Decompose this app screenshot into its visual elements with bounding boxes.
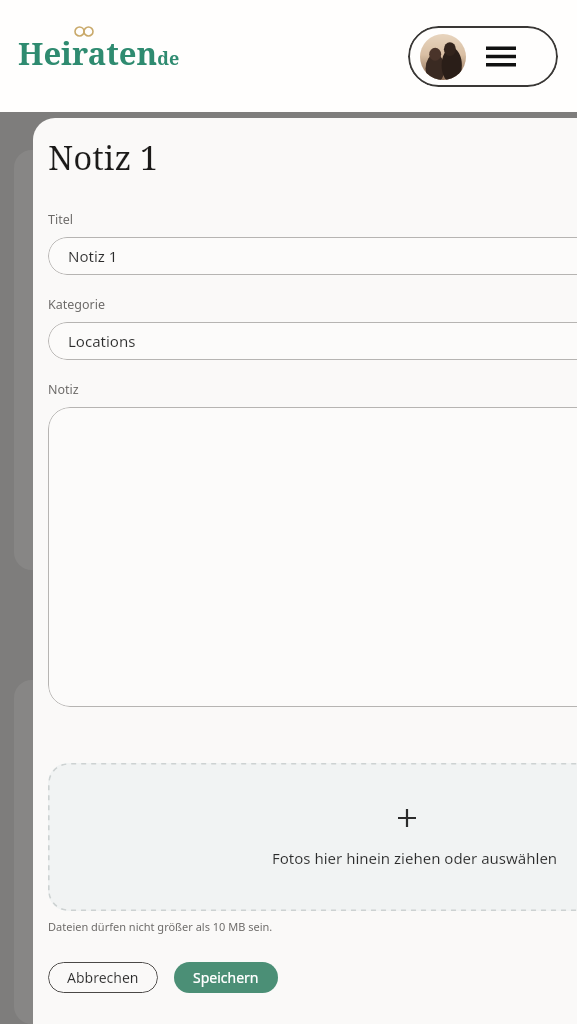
staticText: Speichern [193, 968, 259, 987]
staticText: Fotos hier hinein ziehen oder auswählen [272, 848, 558, 868]
button[interactable]: Abbrechen [48, 962, 158, 993]
staticText: Titel [48, 211, 73, 228]
staticText: Notiz [48, 381, 79, 398]
staticText: Abbrechen [67, 968, 139, 987]
staticText: Notiz 1 [48, 135, 159, 180]
staticText: Kategorie [48, 296, 106, 313]
staticText: Heiraten [18, 32, 158, 74]
staticText: Dateien dürfen nicht größer als 10 MB se… [48, 919, 273, 934]
button[interactable]: Speichern [174, 962, 278, 993]
staticText: Notiz 1 [68, 246, 118, 266]
button[interactable]: Fotos hier hinein ziehen oder auswählen [48, 763, 577, 911]
button[interactable]: Locations [48, 322, 577, 360]
button[interactable]: Notiz 1 [48, 237, 577, 275]
button[interactable] [48, 407, 577, 707]
staticText: Locations [68, 331, 136, 351]
staticText: .de [152, 46, 180, 71]
button[interactable]: Menü öffnen [408, 26, 558, 87]
